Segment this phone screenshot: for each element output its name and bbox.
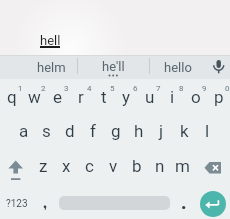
button[interactable] — [205, 55, 230, 79]
staticText: m — [175, 156, 190, 176]
button[interactable] — [196, 150, 230, 185]
staticText: s — [42, 121, 51, 141]
button[interactable]: x — [55, 148, 78, 184]
staticText: u — [145, 87, 155, 107]
button[interactable]: he'll — [77, 54, 149, 78]
staticText: n — [155, 156, 165, 176]
button[interactable] — [176, 199, 192, 215]
button[interactable]: t — [92, 79, 115, 115]
staticText: 0 — [225, 84, 230, 92]
button[interactable]: k — [173, 113, 196, 149]
staticText: 2 — [41, 84, 46, 92]
staticText: j — [159, 121, 164, 141]
button[interactable]: j — [150, 113, 173, 149]
button[interactable]: n — [148, 148, 171, 184]
staticText: c — [85, 156, 94, 176]
staticText: z — [39, 156, 48, 176]
staticText: 1 — [18, 84, 23, 92]
button[interactable]: l — [196, 113, 219, 149]
staticText: hell — [40, 33, 61, 48]
button[interactable]: helm — [25, 55, 77, 79]
staticText: q — [7, 87, 17, 107]
button[interactable]: ?123 — [0, 187, 34, 219]
staticText: h — [134, 121, 144, 141]
staticText: 4 — [87, 84, 92, 92]
staticText: a — [19, 121, 29, 141]
staticText: 5 — [110, 84, 115, 92]
staticText: k — [180, 121, 189, 141]
button[interactable]: h — [127, 113, 150, 149]
button[interactable] — [0, 150, 32, 185]
button[interactable]: w — [23, 79, 46, 115]
button[interactable]: y — [115, 79, 138, 115]
staticText: hello — [164, 60, 192, 75]
staticText: helm — [37, 60, 66, 75]
staticText: p — [214, 87, 224, 107]
button[interactable]: r — [69, 79, 92, 115]
staticText: f — [90, 121, 96, 141]
staticText: y — [122, 87, 131, 107]
button[interactable]: m — [171, 148, 194, 184]
button[interactable]: i — [161, 79, 184, 115]
staticText: l — [205, 121, 210, 141]
staticText: w — [28, 87, 41, 107]
staticText: 8 — [179, 84, 184, 92]
button[interactable] — [200, 191, 226, 217]
staticText: 7 — [156, 84, 161, 92]
staticText: ?123 — [6, 198, 28, 210]
staticText: 3 — [64, 84, 69, 92]
button[interactable]: hello — [149, 55, 207, 79]
button[interactable]: p — [207, 79, 230, 115]
staticText: o — [191, 87, 201, 107]
staticText: i — [170, 87, 175, 107]
button[interactable]: v — [102, 148, 125, 184]
button[interactable]: b — [125, 148, 148, 184]
button[interactable]: o — [184, 79, 207, 115]
button[interactable]: q — [0, 79, 23, 115]
staticText: v — [109, 156, 118, 176]
button[interactable]: z — [32, 148, 55, 184]
button[interactable]: c — [78, 148, 101, 184]
button[interactable]: a — [12, 113, 35, 149]
staticText: e — [53, 87, 63, 107]
staticText: b — [132, 156, 142, 176]
staticText: g — [111, 121, 121, 141]
staticText: d — [65, 121, 75, 141]
staticText: he'll — [102, 59, 125, 74]
button[interactable] — [37, 196, 53, 214]
button[interactable]: u — [138, 79, 161, 115]
staticText: t — [101, 87, 107, 107]
staticText: 9 — [202, 84, 207, 92]
button[interactable]: s — [35, 113, 58, 149]
staticText: x — [62, 156, 71, 176]
button[interactable]: f — [81, 113, 104, 149]
button[interactable]: e — [46, 79, 69, 115]
button[interactable]: g — [104, 113, 127, 149]
button[interactable]: d — [58, 113, 81, 149]
staticText: r — [78, 87, 84, 107]
staticText: 6 — [133, 84, 138, 92]
